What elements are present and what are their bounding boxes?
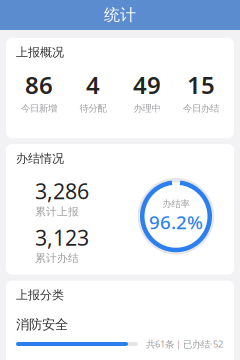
staticText: 3,123 — [35, 223, 89, 251]
staticText: 办理中 — [133, 103, 160, 114]
staticText: 上报概况 — [16, 45, 64, 60]
staticText: 今日新增 — [21, 103, 57, 114]
staticText: 共61条 | 已办结·52 — [146, 338, 223, 350]
staticText: 待分配 — [79, 103, 106, 114]
staticText: 办结率 — [162, 198, 189, 210]
staticText: 消防安全 — [16, 316, 68, 333]
button[interactable]: 消防安全 — [6, 302, 234, 360]
staticText: 49 — [133, 69, 161, 101]
staticText: 3,286 — [35, 177, 89, 205]
staticText: 4 — [86, 69, 100, 101]
staticText: 累计上报 — [35, 205, 79, 218]
staticText: 15 — [187, 69, 215, 101]
staticText: 办结情况 — [16, 151, 64, 166]
staticText: 今日办结 — [183, 103, 219, 114]
staticText: 96.2% — [149, 210, 203, 234]
staticText: 统计 — [104, 5, 136, 25]
staticText: 累计办结 — [35, 252, 79, 265]
staticText: 86 — [25, 69, 53, 101]
staticText: 上报分类 — [16, 288, 64, 302]
